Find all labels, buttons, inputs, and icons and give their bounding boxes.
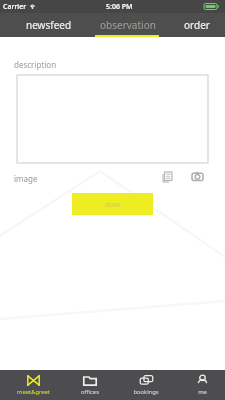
- button[interactable]: bookings: [118, 370, 174, 400]
- staticText: meet&greet: [17, 388, 50, 396]
- staticText: offices: [81, 388, 99, 396]
- button[interactable]: Pick image from gallery: [160, 169, 175, 184]
- staticText: image: [14, 173, 38, 184]
- button[interactable]: observation: [100, 13, 156, 37]
- button[interactable]: meet&greet: [5, 370, 62, 400]
- staticText: description: [14, 59, 57, 70]
- staticText: observation: [100, 18, 156, 32]
- staticText: bookings: [133, 388, 159, 396]
- staticText: me: [198, 388, 207, 396]
- staticText: 5:06 PM: [106, 2, 133, 12]
- button[interactable]: [17, 75, 208, 163]
- staticText: newsfeed: [26, 18, 72, 32]
- button[interactable]: order: [184, 13, 210, 37]
- staticText: Carrier: [3, 2, 27, 12]
- button[interactable]: offices: [62, 370, 118, 400]
- button[interactable]: newsfeed: [26, 13, 72, 37]
- staticText: order: [184, 18, 210, 32]
- button[interactable]: Take photo: [190, 169, 205, 184]
- button[interactable]: me: [174, 370, 225, 400]
- button[interactable]: done: [72, 193, 153, 215]
- staticText: done: [105, 200, 121, 209]
